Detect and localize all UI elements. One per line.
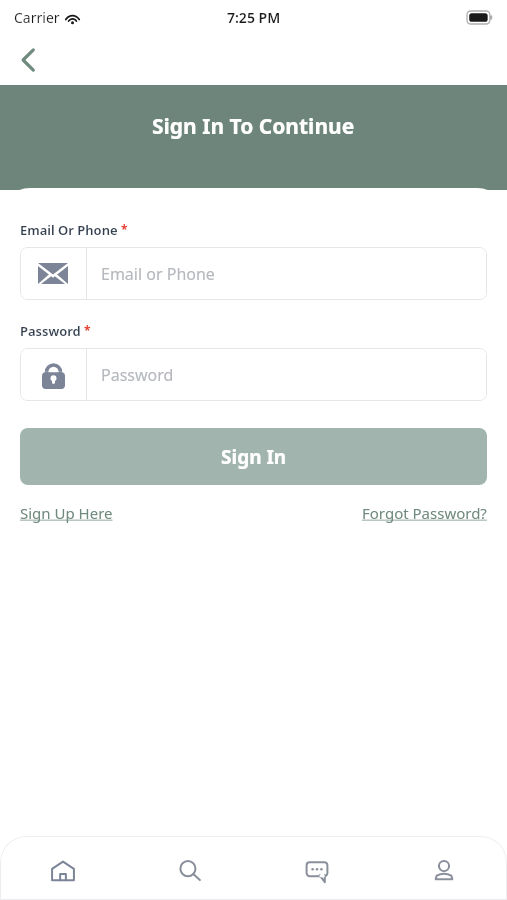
button[interactable]: Email or Phone (20, 247, 487, 300)
staticText: * (121, 221, 128, 237)
button[interactable]: Password (20, 348, 487, 401)
staticText: Carrier (14, 8, 60, 27)
staticText: Forgot Password? (362, 503, 487, 523)
button[interactable]: Profile (380, 842, 507, 900)
button[interactable]: Sign Up Here (20, 503, 113, 523)
button[interactable]: Home (0, 842, 126, 900)
button[interactable]: Forgot Password? (362, 503, 487, 523)
staticText: Password (20, 322, 81, 340)
staticText: Email or Phone (101, 263, 215, 285)
staticText: * (84, 322, 91, 338)
button[interactable]: Search (126, 842, 253, 900)
staticText: Sign In (221, 444, 287, 470)
staticText: Password (101, 364, 174, 386)
button[interactable]: Back (8, 40, 48, 80)
staticText: 7:25 PM (227, 8, 281, 27)
button[interactable]: Sign In (20, 428, 487, 485)
staticText: Sign Up Here (20, 503, 113, 523)
button[interactable]: Messages (253, 842, 380, 900)
staticText: Email Or Phone (20, 221, 118, 239)
staticText: Sign In To Continue (152, 112, 355, 141)
